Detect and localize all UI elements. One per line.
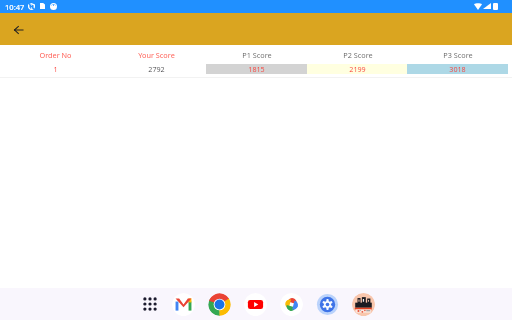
staticText: 3018 (449, 64, 466, 74)
button[interactable]: Gmail (172, 293, 195, 316)
button[interactable]: 2199 (307, 63, 408, 75)
staticText: Your Score (138, 50, 175, 60)
staticText: 1 (53, 64, 58, 74)
staticText: P3 Score (443, 50, 473, 60)
staticText: 2792 (148, 64, 165, 74)
button[interactable]: Chrome (208, 293, 231, 316)
staticText: P2 Score (343, 50, 373, 60)
button[interactable]: Order No (5, 48, 106, 61)
button[interactable]: 1 (5, 63, 106, 75)
staticText: P1 Score (242, 50, 272, 60)
button[interactable]: P3 Score (407, 48, 508, 61)
button[interactable]: Photos (280, 293, 303, 316)
staticText: Order No (39, 50, 72, 60)
button[interactable]: YouTube (244, 293, 267, 316)
staticText: 1815 (248, 64, 265, 74)
button[interactable]: 3018 (407, 63, 508, 75)
staticText: 10:47 (5, 2, 25, 12)
button[interactable]: Recorder (352, 293, 375, 316)
button[interactable]: 1815 (206, 63, 307, 75)
button[interactable]: All apps (140, 294, 160, 314)
button[interactable]: Settings (316, 293, 339, 316)
button[interactable]: Your Score (106, 48, 207, 61)
button[interactable]: Back (6, 17, 31, 42)
staticText: 2199 (349, 64, 366, 74)
button[interactable]: P2 Score (307, 48, 408, 61)
button[interactable]: 2792 (106, 63, 207, 75)
button[interactable]: P1 Score (206, 48, 307, 61)
